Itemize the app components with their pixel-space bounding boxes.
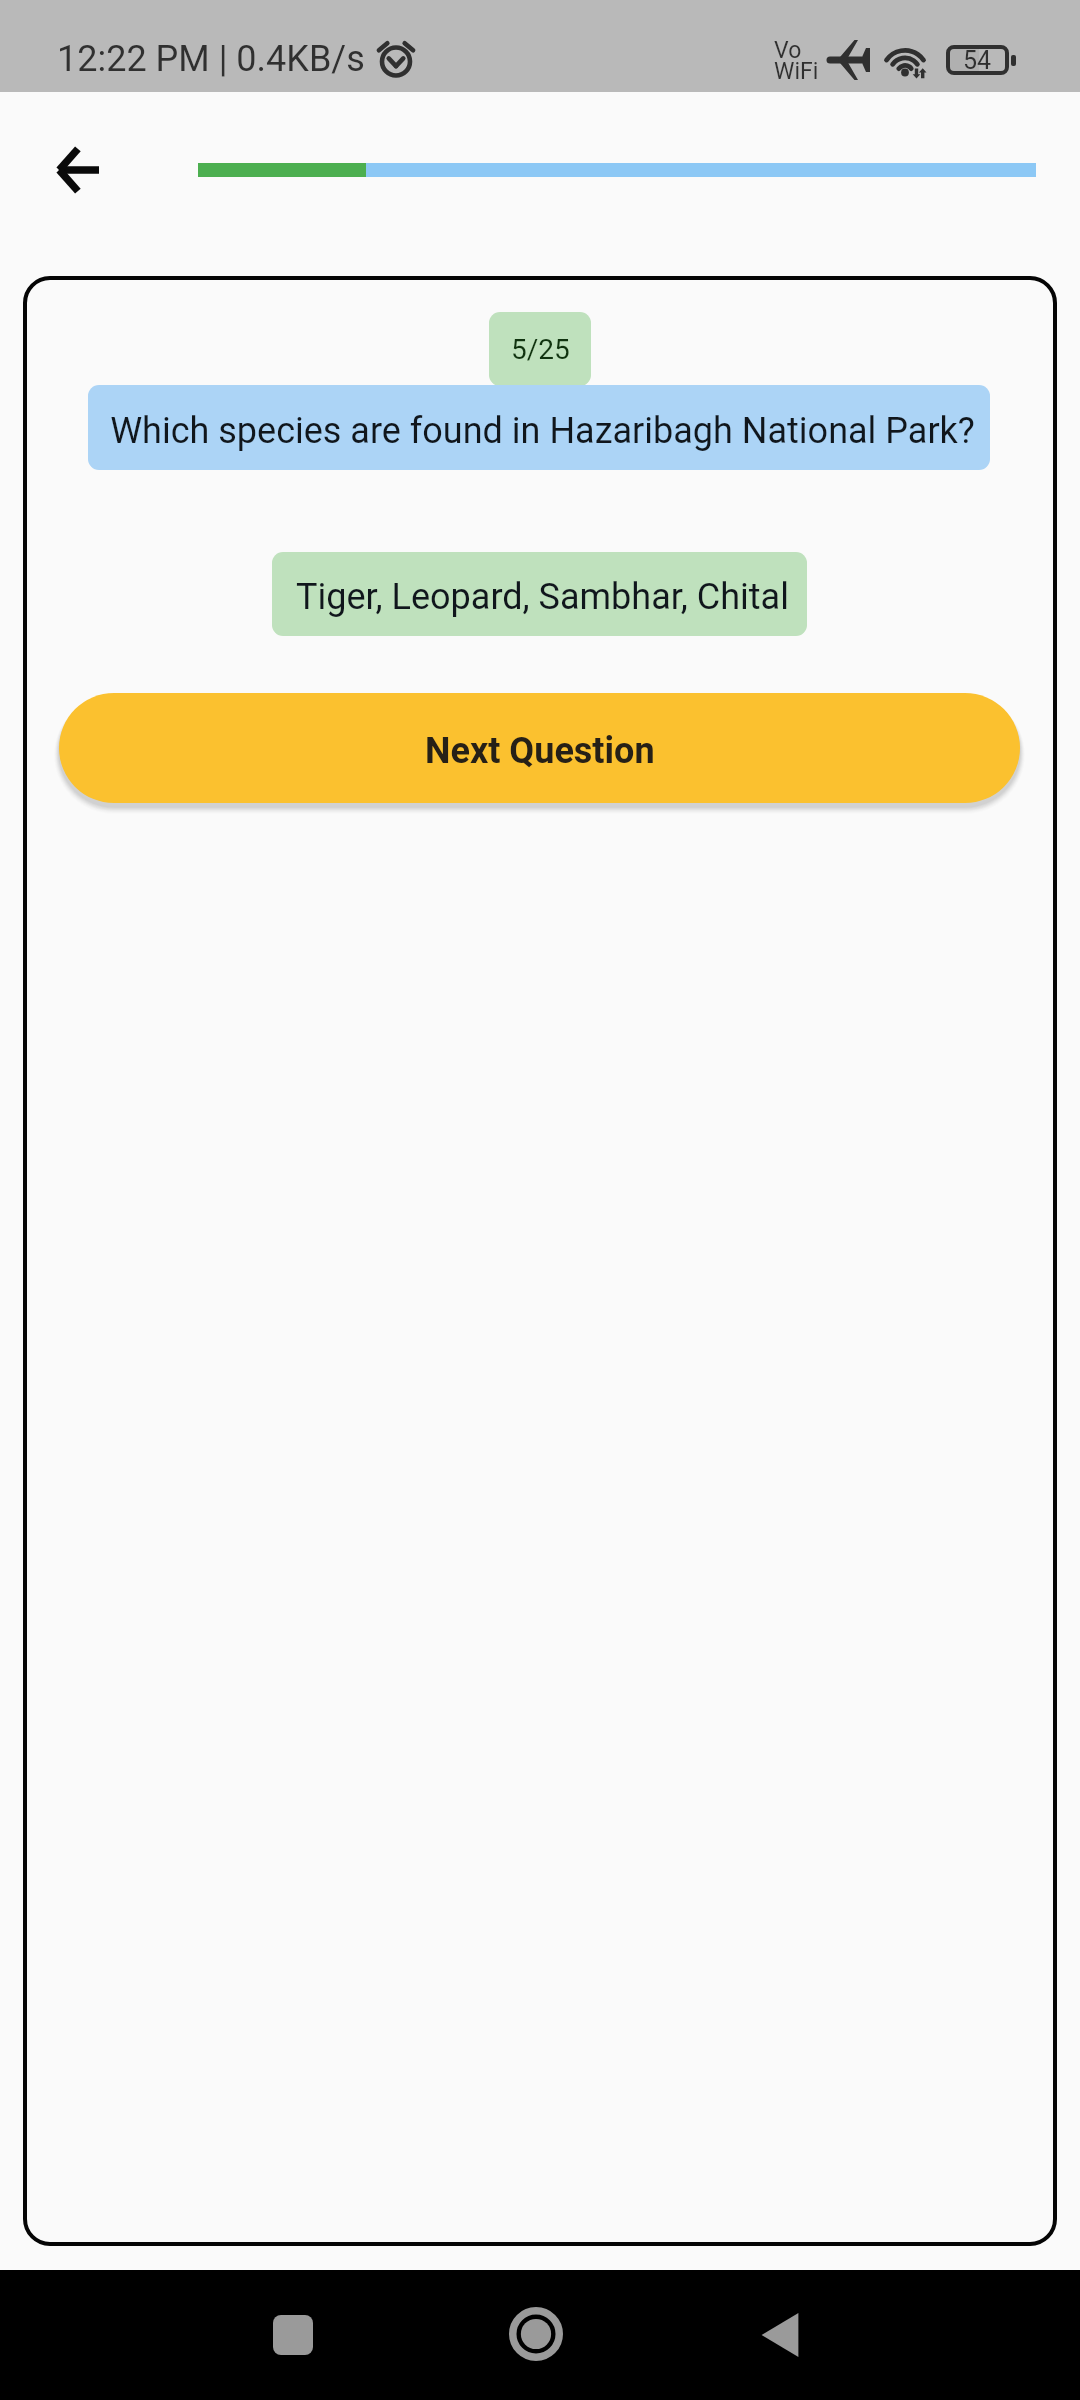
staticText: Which species are found in Hazaribagh Na… xyxy=(110,410,975,452)
staticText: 12:22 PM | 0.4KB/s xyxy=(57,38,365,80)
button[interactable]: Next Question xyxy=(59,693,1020,803)
button[interactable]: Recents xyxy=(245,2287,341,2383)
staticText: Tiger, Leopard, Sambhar, Chital xyxy=(296,576,789,618)
button[interactable]: Home xyxy=(488,2286,584,2382)
button[interactable]: Back xyxy=(732,2287,828,2383)
button[interactable]: Back xyxy=(29,122,125,218)
button[interactable]: Tiger, Leopard, Sambhar, Chital xyxy=(272,552,807,636)
staticText: Vo WiFi xyxy=(774,37,819,84)
staticText: 54 xyxy=(963,46,992,75)
staticText: 5/25 xyxy=(511,333,570,366)
staticText: Next Question xyxy=(425,730,655,772)
